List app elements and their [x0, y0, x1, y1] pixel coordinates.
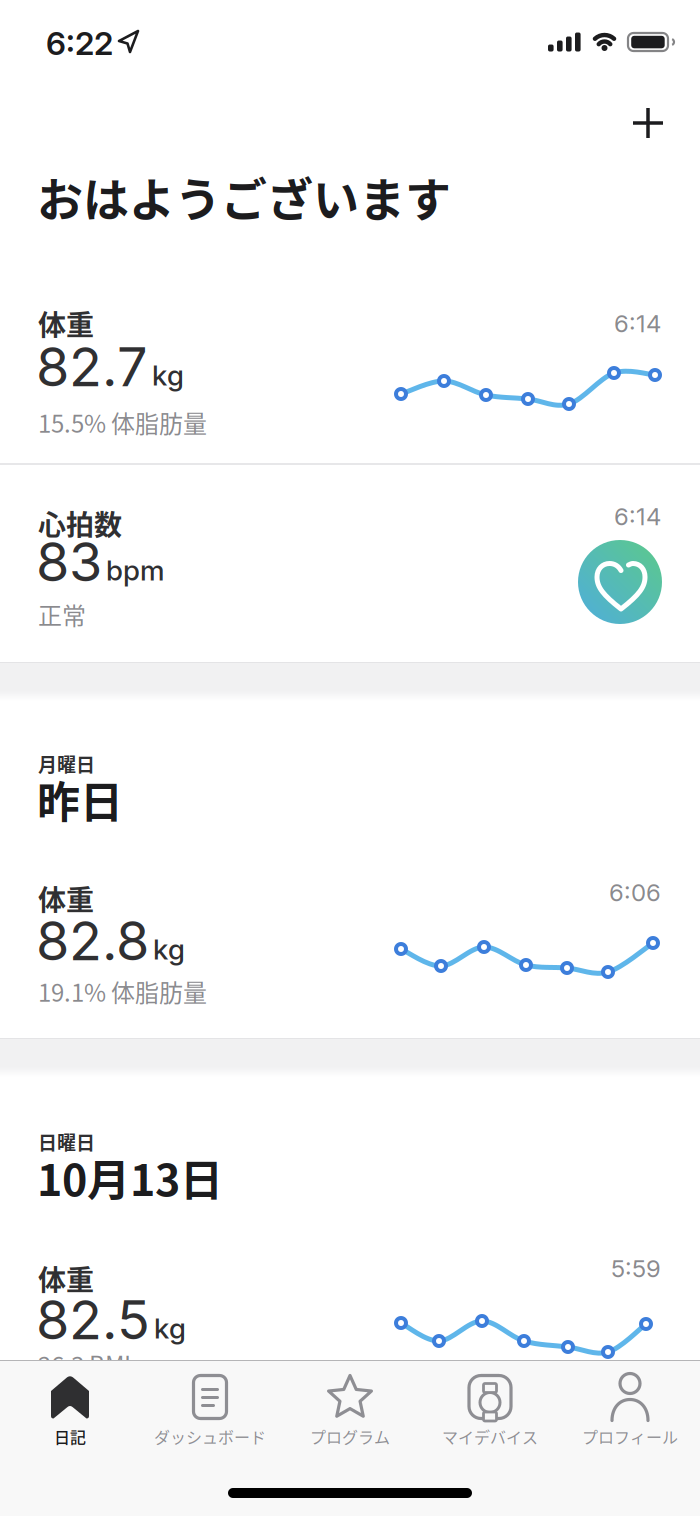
button[interactable]: プロフィール	[560, 1373, 700, 1448]
staticText: ダッシュボード	[154, 1425, 266, 1448]
staticText: 82.8	[36, 908, 149, 973]
staticText: 6:06	[609, 878, 661, 907]
staticText: 正常	[38, 597, 86, 632]
staticText: bpm	[106, 553, 165, 587]
staticText: 体重	[38, 1258, 94, 1298]
staticText: 26.3 BMI	[38, 1346, 131, 1381]
button[interactable]: 日記	[0, 1373, 140, 1448]
staticText: おはようございます	[37, 163, 451, 230]
staticText: 体重	[38, 878, 94, 918]
staticText: 6:14	[614, 502, 661, 531]
button[interactable]: プログラム	[280, 1373, 420, 1448]
staticText: kg	[153, 932, 185, 966]
button[interactable]: ダッシュボード	[140, 1373, 280, 1448]
button[interactable]: 追加	[619, 94, 677, 152]
staticText: 5:59	[611, 1254, 661, 1283]
staticText: 体重	[38, 303, 94, 343]
staticText: 6:22	[46, 24, 113, 63]
staticText: 日記	[54, 1425, 86, 1448]
button[interactable]: 体重	[0, 866, 700, 1036]
staticText: 月曜日	[38, 750, 95, 777]
staticText: 15.5% 体脂肪量	[38, 405, 207, 440]
staticText: kg	[154, 1311, 186, 1345]
button[interactable]: 体重	[0, 296, 700, 463]
staticText: プログラム	[310, 1425, 390, 1448]
staticText: プロフィール	[582, 1425, 678, 1448]
button[interactable]: 心拍数	[0, 466, 700, 662]
staticText: 心拍数	[38, 503, 122, 543]
staticText: 昨日	[37, 768, 123, 830]
button[interactable]: マイデバイス	[420, 1373, 560, 1448]
staticText: 10月13日	[37, 1146, 223, 1208]
staticText: 6:14	[614, 309, 661, 338]
staticText: 82.5	[36, 1287, 150, 1352]
staticText: 日曜日	[38, 1128, 95, 1155]
staticText: 82.7	[36, 334, 148, 399]
staticText: マイデバイス	[442, 1425, 538, 1448]
button[interactable]: 体重	[0, 1241, 700, 1360]
staticText: kg	[152, 358, 184, 392]
staticText: 19.1% 体脂肪量	[38, 974, 207, 1009]
staticText: 83	[36, 529, 102, 594]
